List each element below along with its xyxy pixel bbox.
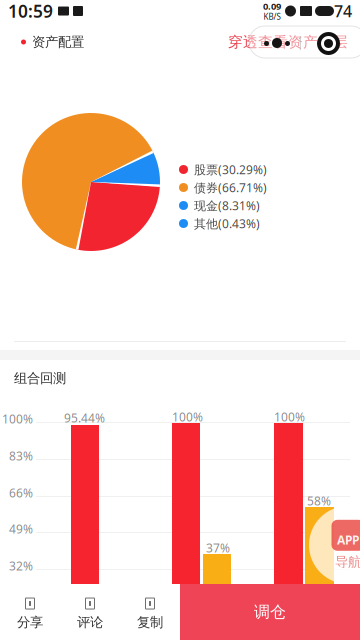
staticText: 穿透查看资产底层 (228, 33, 348, 51)
staticText: 100% (172, 409, 203, 425)
staticText: 资产配置 (32, 34, 84, 50)
staticText: 分享 (17, 614, 43, 630)
button[interactable]: 调仓 (180, 584, 360, 640)
staticText: 100% (2, 411, 33, 427)
staticText: 74 (334, 0, 352, 22)
staticText: 评论 (77, 614, 103, 630)
staticText: APP (337, 532, 359, 548)
staticText: 债券(66.71%) (194, 179, 267, 195)
staticText: 组合回测 (14, 370, 66, 386)
staticText: 100% (274, 409, 305, 425)
staticText: 32% (9, 558, 33, 574)
staticText: 调仓 (254, 602, 286, 622)
button[interactable]: 穿透查看资产底层 (228, 33, 348, 51)
button[interactable]: 复制 (120, 584, 180, 640)
staticText: 95.44% (64, 410, 105, 426)
staticText: KB/S (263, 11, 280, 22)
staticText: 导航 (335, 554, 360, 570)
staticText: 股票(30.29%) (194, 161, 267, 177)
staticText: 37% (206, 540, 230, 556)
staticText: 10:59 (8, 0, 53, 22)
staticText: 复制 (137, 614, 163, 630)
button[interactable]: Record (317, 32, 340, 55)
staticText: 49% (9, 521, 33, 537)
staticText: 58% (307, 493, 331, 509)
staticText: 现金(8.31%) (194, 197, 260, 213)
staticText: 83% (9, 448, 33, 464)
button[interactable]: 评论 (60, 584, 120, 640)
staticText: 0.09 (263, 0, 281, 12)
button[interactable]: 导航 (309, 506, 360, 584)
staticText: 其他(0.43%) (194, 215, 260, 231)
staticText: 66% (9, 485, 33, 501)
button[interactable]: 分享 (0, 584, 60, 640)
